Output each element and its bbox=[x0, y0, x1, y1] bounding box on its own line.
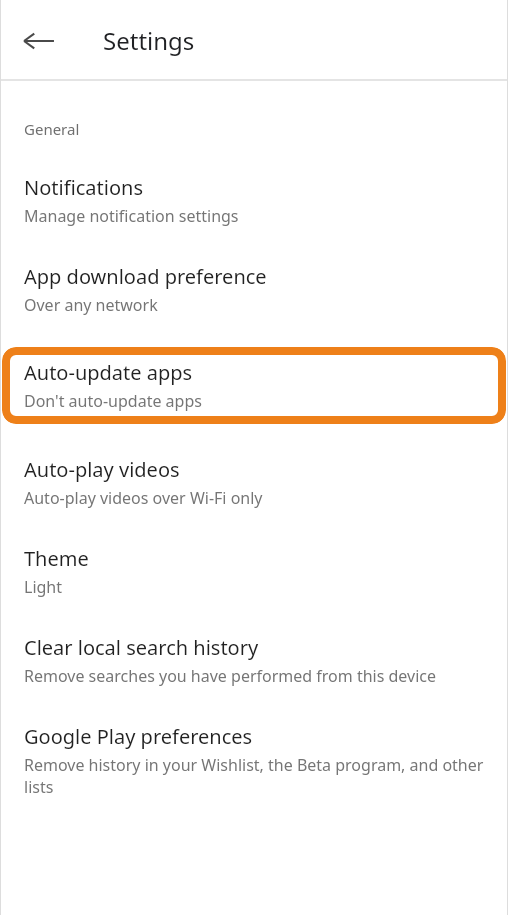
button[interactable]: Notifications bbox=[0, 139, 508, 227]
button[interactable]: Auto-update apps bbox=[2, 347, 506, 424]
staticText: Over any network bbox=[24, 294, 158, 316]
staticText: Clear local search history bbox=[24, 634, 259, 661]
staticText: Auto-update apps bbox=[24, 359, 193, 386]
button[interactable]: Theme bbox=[0, 509, 508, 598]
staticText: Auto-play videos over Wi-Fi only bbox=[24, 487, 263, 509]
button[interactable]: Back bbox=[16, 18, 62, 64]
staticText: Remove history in your Wishlist, the Bet… bbox=[24, 754, 484, 798]
button[interactable]: App download preference bbox=[0, 227, 508, 316]
staticText: Auto-play videos bbox=[24, 456, 180, 483]
staticText: App download preference bbox=[24, 263, 267, 290]
staticText: Don't auto-update apps bbox=[24, 390, 202, 412]
staticText: Theme bbox=[24, 545, 89, 572]
button[interactable]: Auto-play videos bbox=[0, 424, 508, 509]
staticText: General bbox=[24, 119, 80, 139]
button[interactable]: Clear local search history bbox=[0, 598, 508, 687]
staticText: Settings bbox=[103, 24, 195, 57]
button[interactable]: Google Play preferences bbox=[0, 687, 508, 798]
staticText: Notifications bbox=[24, 174, 143, 201]
staticText: Google Play preferences bbox=[24, 723, 253, 750]
staticText: Remove searches you have performed from … bbox=[24, 665, 437, 687]
staticText: Manage notification settings bbox=[24, 205, 239, 227]
staticText: Light bbox=[24, 576, 63, 598]
